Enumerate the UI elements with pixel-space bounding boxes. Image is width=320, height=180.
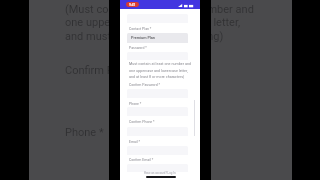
staticText: Have an account? Log In — [144, 171, 176, 174]
staticText: one uppercase and lowercase letter, — [65, 16, 241, 29]
staticText: Confirm Password * — [129, 83, 161, 87]
button[interactable] — [127, 33, 188, 43]
staticText: Phone * — [129, 102, 142, 106]
staticText: and at least 8 or more characters) — [129, 75, 185, 79]
staticText: Password * — [129, 46, 147, 50]
staticText: Premium Plan — [131, 35, 155, 39]
staticText: one uppercase and lowercase letter, — [129, 69, 188, 73]
staticText: Email * — [129, 140, 141, 144]
staticText: and must be 8+ characters long) — [65, 30, 224, 43]
staticText: (Must contain at least one number and — [65, 3, 254, 16]
staticText: Contact Plan * — [129, 27, 152, 31]
staticText: Phone * — [65, 126, 104, 139]
staticText: Confirm Password * — [65, 64, 163, 77]
staticText: Confirm Email * — [129, 158, 154, 162]
staticText: Confirm Phone * — [129, 120, 155, 124]
staticText: 9:41 — [129, 3, 136, 7]
button[interactable] — [127, 164, 188, 172]
staticText: Must contain at least one number and — [129, 62, 192, 66]
